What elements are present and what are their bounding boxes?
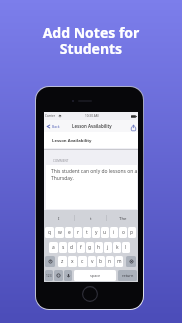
staticText: Carrier [45,114,56,118]
staticText: a [52,244,55,251]
button[interactable]: e [65,227,73,238]
staticText: o [122,229,125,236]
staticText: p [130,229,134,236]
button[interactable]: n [106,256,114,267]
staticText: s [62,244,65,251]
button[interactable]: d [68,242,76,253]
staticText: e [68,229,71,236]
staticText: z [61,258,64,265]
button[interactable]: I [44,215,74,221]
button[interactable]: x [68,256,77,267]
staticText: Lesson Availability [52,137,92,143]
button[interactable]: space [74,270,116,281]
button[interactable]: Backspace [126,256,136,267]
button[interactable]: a [49,242,58,253]
button[interactable]: j [104,242,112,253]
button[interactable]: u [101,227,109,238]
button[interactable]: i [110,227,118,238]
button[interactable]: s [59,242,67,253]
staticText: return [122,273,134,278]
button[interactable]: 123 [45,270,53,281]
staticText: This student can only do lessons on a Th… [51,168,139,181]
staticText: Add Notes for Students [0,23,182,58]
button[interactable]: y [92,227,100,238]
staticText: x [71,258,74,265]
staticText: space [90,273,101,278]
button[interactable]: Shift [45,256,55,267]
button[interactable]: Lesson Availability [44,132,138,148]
staticText: u [103,229,107,236]
staticText: l [125,244,127,251]
staticText: f [80,244,82,251]
staticText: c [81,258,84,265]
staticText: g [88,244,92,251]
button[interactable]: t [75,215,106,221]
button[interactable]: m [115,256,123,267]
staticText: d [70,244,74,251]
button[interactable]: k [113,242,121,253]
staticText: The [119,215,127,221]
staticText: v [91,258,94,265]
button[interactable]: c [78,256,87,267]
staticText: m [117,258,122,265]
staticText: j [107,244,109,251]
button[interactable]: return [118,270,137,281]
button[interactable]: Dictation [64,270,72,281]
button[interactable]: g [86,242,94,253]
button[interactable]: Emoji [54,270,63,281]
staticText: w [58,229,62,236]
button[interactable]: The [107,215,138,221]
button[interactable]: Share [130,124,137,131]
staticText: 10:30 AM [85,114,99,118]
button[interactable]: p [128,227,136,238]
staticText: t [86,229,88,236]
button[interactable]: v [88,256,96,267]
staticText: n [108,258,112,265]
staticText: y [95,229,98,236]
staticText: i [113,229,115,236]
staticText: r [77,229,80,236]
staticText: b [99,258,103,265]
staticText: Lesson Availability [72,123,112,129]
button[interactable]: r [74,227,82,238]
button[interactable]: o [119,227,127,238]
button[interactable]: b [97,256,105,267]
staticText: 123 [46,274,52,278]
staticText: k [116,244,119,251]
staticText: COMMENT [53,159,69,163]
button[interactable]: l [122,242,130,253]
button[interactable]: z [58,256,67,267]
staticText: I [58,215,60,221]
button[interactable]: h [95,242,103,253]
staticText: t [90,215,92,221]
button[interactable]: q [45,227,54,238]
button[interactable]: t [83,227,91,238]
button[interactable]: f [77,242,85,253]
button[interactable]: w [55,227,64,238]
button[interactable]: This student can only do lessons on a Th… [46,165,137,209]
staticText: Back [52,124,60,129]
staticText: h [97,244,101,251]
button[interactable]: Back [46,124,60,129]
staticText: q [48,229,52,236]
